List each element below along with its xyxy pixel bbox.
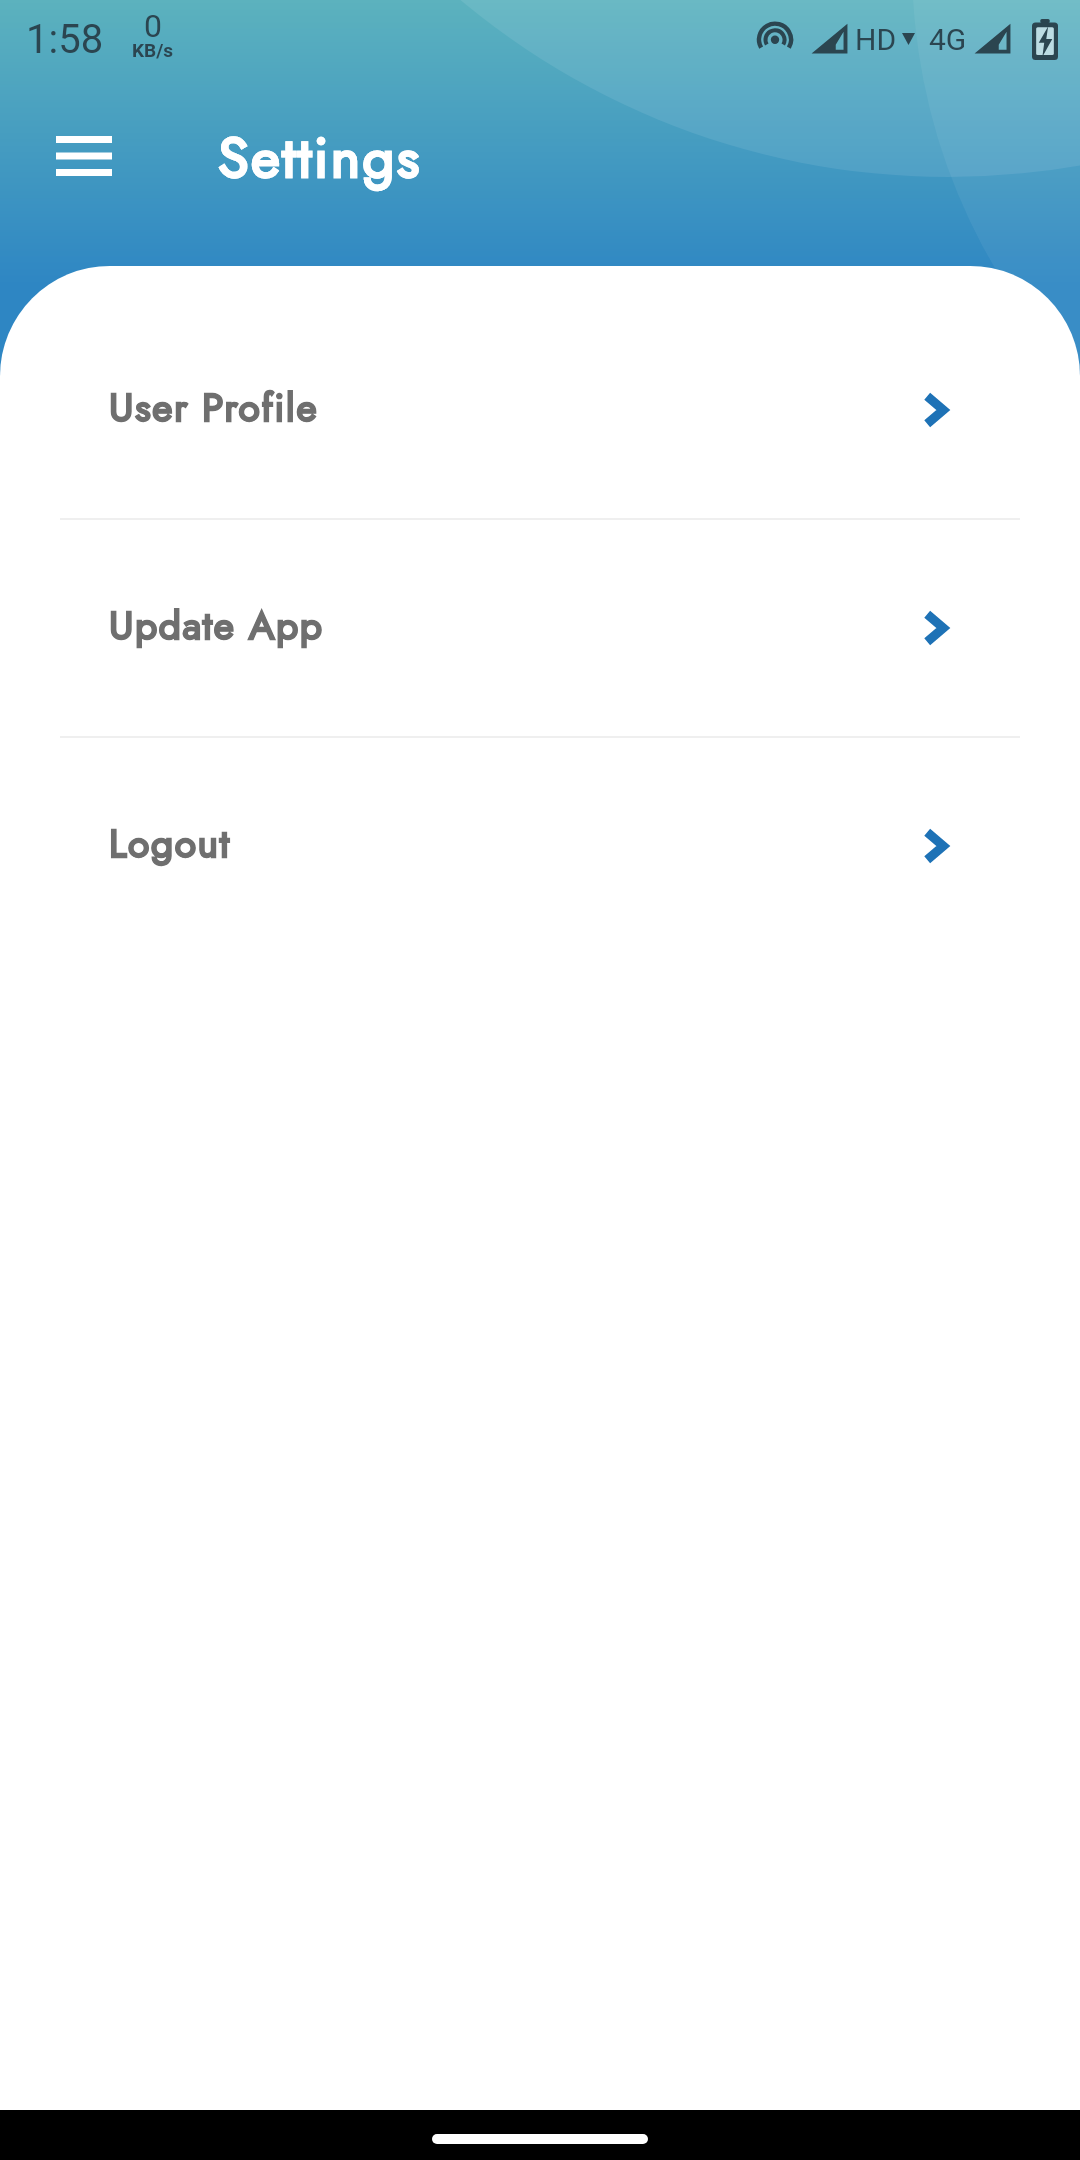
staticText: Settings bbox=[218, 117, 422, 195]
button[interactable]: Open navigation menu bbox=[30, 117, 138, 195]
button[interactable]: Update App bbox=[0, 520, 1080, 736]
button[interactable]: Logout bbox=[0, 738, 1080, 954]
button[interactable]: User Profile bbox=[0, 302, 1080, 518]
staticText: Logout bbox=[109, 815, 231, 871]
staticText: Update App bbox=[109, 597, 324, 653]
staticText: 1:58 bbox=[26, 16, 104, 63]
staticText: Update App bbox=[109, 597, 324, 653]
staticText: Logout bbox=[109, 815, 231, 871]
staticText: HD bbox=[855, 22, 897, 57]
staticText: 4G bbox=[929, 22, 967, 57]
staticText: 0 bbox=[144, 7, 162, 45]
staticText: Settings bbox=[218, 117, 422, 195]
staticText: User Profile bbox=[109, 379, 319, 435]
staticText: User Profile bbox=[109, 379, 319, 435]
staticText: KB/s bbox=[132, 39, 174, 61]
